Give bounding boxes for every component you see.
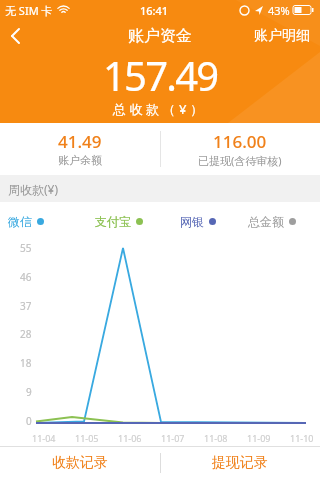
staticText: 55 — [20, 241, 32, 255]
staticText: 已提现(含待审核) — [198, 153, 282, 168]
button[interactable]: 网银 — [180, 214, 216, 229]
button[interactable]: 提现记录 — [160, 446, 320, 480]
staticText: 11-09 — [247, 432, 271, 444]
staticText: 11-07 — [161, 432, 185, 444]
staticText: 11-10 — [290, 432, 314, 444]
button[interactable]: 账户明细 — [254, 27, 320, 45]
staticText: 157.49 — [103, 48, 218, 102]
staticText: 总金额 — [248, 214, 284, 229]
staticText: 支付宝 — [95, 214, 131, 229]
staticText: 账户明细 — [254, 27, 310, 45]
staticText: 0 — [26, 414, 32, 428]
staticText: 收款记录 — [52, 454, 108, 472]
staticText: 43% — [268, 3, 290, 18]
button[interactable]: 微信 — [8, 214, 44, 229]
staticText: 11-08 — [204, 432, 228, 444]
staticText: 46 — [20, 270, 32, 284]
staticText: 无 SIM 卡 — [5, 3, 53, 18]
staticText: 11-06 — [118, 432, 142, 444]
button[interactable] — [0, 23, 30, 49]
staticText: 账户资金 — [128, 26, 192, 46]
button[interactable]: 116.00 — [160, 123, 320, 175]
button[interactable]: 支付宝 — [95, 214, 143, 229]
button[interactable]: 收款记录 — [0, 446, 160, 480]
staticText: 11-04 — [32, 432, 56, 444]
staticText: 37 — [20, 299, 32, 313]
staticText: 微信 — [8, 214, 32, 229]
staticText: 网银 — [180, 214, 204, 229]
staticText: 28 — [20, 327, 32, 341]
staticText: 周收款(¥) — [8, 181, 59, 197]
staticText: 16:41 — [140, 3, 169, 18]
staticText: 9 — [26, 385, 32, 399]
button[interactable]: 总金额 — [248, 214, 296, 229]
staticText: 116.00 — [213, 130, 267, 153]
staticText: 18 — [20, 356, 32, 370]
staticText: 11-05 — [75, 432, 99, 444]
button[interactable]: 41.49 — [0, 123, 160, 175]
staticText: 41.49 — [58, 130, 102, 153]
staticText: 总收款（¥） — [113, 100, 207, 118]
staticText: 提现记录 — [212, 454, 268, 472]
staticText: 账户余额 — [58, 153, 102, 167]
